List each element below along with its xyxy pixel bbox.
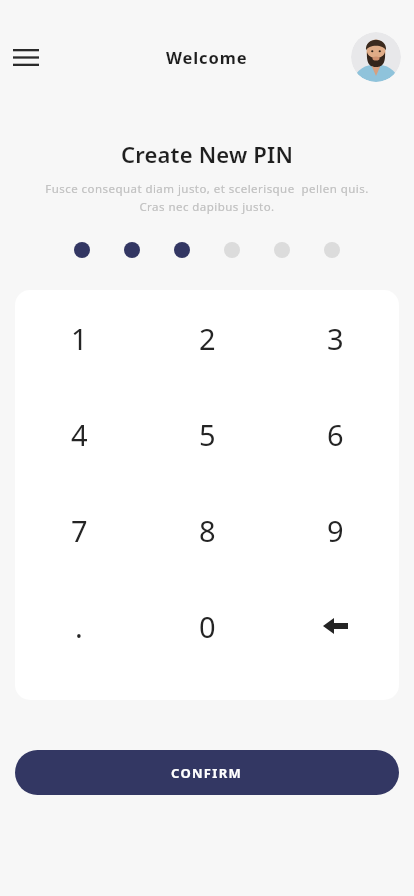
button[interactable]: 6 [271,386,399,482]
staticText: 8 [199,511,216,550]
staticText: . [75,607,83,646]
staticText: Create New PIN [0,139,414,169]
staticText: Welcome [166,46,248,68]
button[interactable]: 8 [143,482,271,578]
button[interactable]: 9 [271,482,399,578]
staticText: 2 [199,319,216,358]
button[interactable]: 3 [271,290,399,386]
staticText: CONFIRM [171,764,243,782]
button[interactable]: Menu [4,35,48,79]
staticText: 6 [327,415,344,454]
staticText: 9 [327,511,344,550]
button[interactable]: 4 [15,386,143,482]
staticText: 5 [199,415,216,454]
button[interactable]: 7 [15,482,143,578]
button[interactable]: Profile [351,32,401,82]
staticText: 1 [71,319,88,358]
button[interactable]: Backspace [271,578,399,674]
button[interactable]: 2 [143,290,271,386]
button[interactable]: 5 [143,386,271,482]
button[interactable]: . [15,578,143,674]
staticText: 3 [327,319,344,358]
staticText: 4 [71,415,88,454]
staticText: 0 [199,607,216,646]
button[interactable]: CONFIRM [15,750,399,795]
staticText: 7 [71,511,88,550]
staticText: Fusce consequat diam justo, et scelerisq… [14,181,400,214]
button[interactable]: 1 [15,290,143,386]
button[interactable]: 0 [143,578,271,674]
